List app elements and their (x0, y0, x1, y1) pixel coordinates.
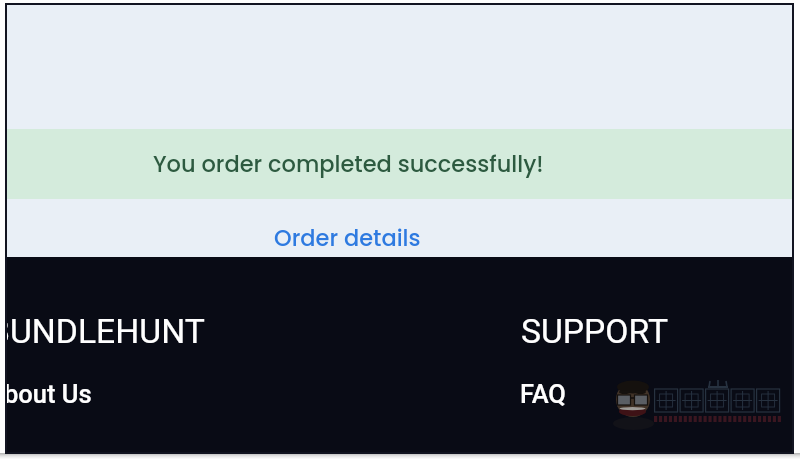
staticText: Order details (274, 222, 421, 253)
staticText: You order completed successfully! (153, 148, 544, 179)
staticText: SUPPORT (521, 312, 669, 351)
staticText: BUNDLEHUNT (7, 312, 205, 351)
button[interactable]: FAQ (514, 375, 572, 413)
other: Site watermark (613, 378, 792, 428)
button[interactable]: About Us (7, 375, 98, 413)
staticText: FAQ (520, 379, 566, 409)
button[interactable]: Order details (268, 218, 427, 257)
staticText: About Us (7, 379, 92, 409)
